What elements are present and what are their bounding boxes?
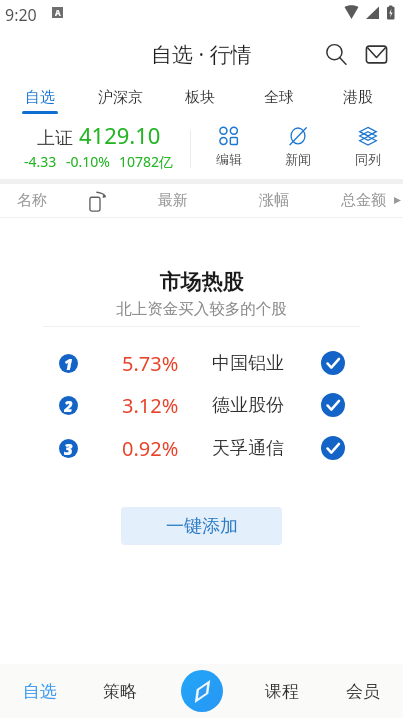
staticText: 名称 [17, 191, 47, 210]
staticText: 总金额 [341, 191, 386, 210]
staticText: -0.10% [66, 152, 110, 171]
staticText: 4129.10 [79, 120, 161, 150]
button[interactable]: Rotate screen [82, 186, 112, 216]
button[interactable]: 3 [0, 427, 403, 469]
staticText: 0.92% [122, 435, 179, 462]
staticText: 2 [64, 396, 73, 415]
staticText: 会员 [346, 681, 380, 702]
button[interactable]: 上证 [4, 116, 194, 175]
staticText: 自选 · 行情 [151, 40, 252, 69]
button[interactable]: 全球 [239, 78, 318, 120]
staticText: 9:20 [5, 4, 37, 26]
staticText: 10782亿 [119, 152, 174, 171]
staticText: 上证 [37, 127, 73, 150]
staticText: 编辑 [216, 151, 242, 167]
staticText: A [55, 7, 61, 18]
staticText: 5.73% [122, 350, 179, 377]
button[interactable]: 编辑 [208, 120, 250, 179]
button[interactable]: 板块 [160, 78, 239, 120]
button[interactable]: 自选 [0, 78, 80, 120]
button[interactable]: 一键添加 [121, 507, 282, 545]
button[interactable]: 会员 [322, 664, 403, 718]
button[interactable]: 港股 [318, 78, 397, 120]
staticText: 同列 [355, 151, 381, 167]
staticText: 自选 [23, 681, 57, 702]
staticText: 市场热股 [0, 269, 403, 295]
button[interactable]: Messages [358, 30, 394, 78]
button[interactable]: 同列 [347, 120, 389, 179]
staticText: 自选 [25, 88, 55, 107]
button[interactable]: Add to watchlist [321, 351, 345, 375]
staticText: 最新 [158, 191, 188, 210]
staticText: 德业股份 [212, 394, 284, 417]
button[interactable]: Home [181, 670, 223, 712]
button[interactable]: 新闻 [277, 120, 319, 179]
button[interactable]: 2 [0, 384, 403, 426]
staticText: 沪深京 [98, 88, 143, 107]
button[interactable]: 沪深京 [80, 78, 160, 120]
button[interactable]: Add to watchlist [321, 436, 345, 460]
staticText: 北上资金买入较多的个股 [0, 299, 403, 319]
staticText: 课程 [265, 681, 299, 702]
staticText: 港股 [343, 88, 373, 107]
staticText: 新闻 [285, 151, 311, 167]
button[interactable]: Add to watchlist [321, 393, 345, 417]
staticText: 全球 [264, 88, 294, 107]
staticText: 涨幅 [259, 191, 289, 210]
button[interactable]: Search [318, 30, 354, 78]
button[interactable]: 策略 [80, 664, 160, 718]
button[interactable]: 自选 [0, 664, 80, 718]
staticText: 一键添加 [166, 515, 238, 538]
staticText: 中国铝业 [212, 352, 284, 375]
staticText: 3.12% [122, 392, 179, 419]
button[interactable]: 1 [0, 342, 403, 384]
button[interactable]: 课程 [241, 664, 322, 718]
staticText: 策略 [103, 681, 137, 702]
staticText: 板块 [185, 88, 215, 107]
staticText: 天孚通信 [212, 437, 284, 460]
staticText: 3 [64, 439, 73, 458]
staticText: -4.33 [24, 152, 57, 171]
staticText: 1 [64, 354, 73, 373]
